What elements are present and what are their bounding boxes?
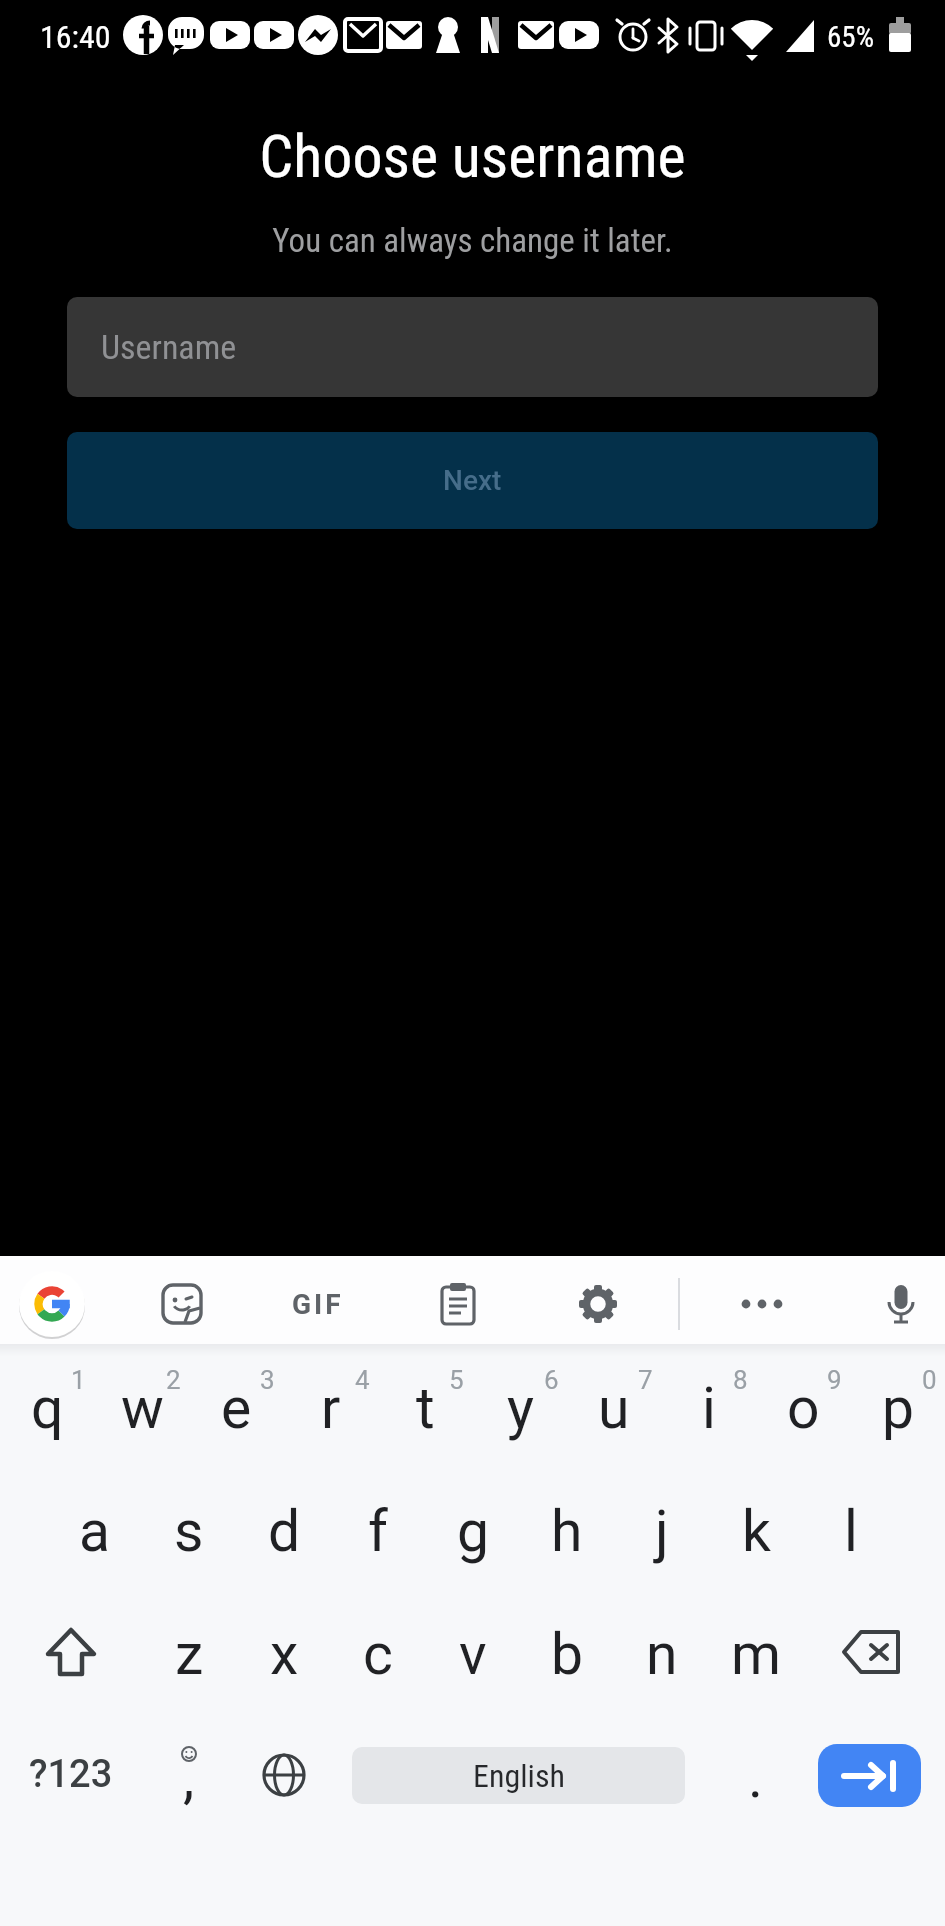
button[interactable]: b bbox=[520, 1590, 614, 1713]
staticText: Username bbox=[101, 327, 237, 367]
button[interactable]: p bbox=[851, 1344, 945, 1467]
staticText: 2 bbox=[166, 1365, 181, 1395]
staticText: 8 bbox=[733, 1365, 748, 1395]
staticText: t bbox=[416, 1375, 435, 1442]
button[interactable]: q bbox=[0, 1344, 94, 1467]
staticText: 65% bbox=[827, 20, 874, 54]
button[interactable]: n bbox=[615, 1590, 709, 1713]
staticText: f bbox=[368, 1498, 388, 1565]
button[interactable] bbox=[237, 1713, 331, 1836]
button[interactable]: c bbox=[331, 1590, 425, 1713]
button[interactable]: u bbox=[567, 1344, 661, 1467]
button[interactable]: a bbox=[48, 1467, 142, 1590]
staticText: , bbox=[183, 1744, 195, 1811]
staticText: q bbox=[31, 1375, 64, 1442]
staticText: 0 bbox=[922, 1365, 937, 1395]
staticText: j bbox=[655, 1498, 669, 1565]
button[interactable]: v bbox=[426, 1590, 520, 1713]
button[interactable]: . bbox=[709, 1713, 803, 1836]
button[interactable]: , bbox=[142, 1713, 236, 1836]
button[interactable] bbox=[0, 1590, 142, 1713]
staticText: English bbox=[473, 1757, 565, 1795]
button[interactable]: x bbox=[237, 1590, 331, 1713]
button[interactable]: r bbox=[284, 1344, 378, 1467]
staticText: . bbox=[748, 1744, 764, 1811]
staticText: g bbox=[457, 1498, 490, 1565]
staticText: d bbox=[268, 1498, 301, 1565]
button[interactable] bbox=[426, 1272, 490, 1336]
staticText: 4 bbox=[355, 1365, 370, 1395]
staticText: n bbox=[646, 1621, 678, 1688]
staticText: l bbox=[844, 1498, 858, 1565]
button[interactable]: m bbox=[709, 1590, 803, 1713]
staticText: You can always change it later. bbox=[0, 221, 945, 260]
button[interactable] bbox=[150, 1272, 214, 1336]
staticText: Choose username bbox=[0, 121, 945, 191]
button[interactable] bbox=[19, 1271, 85, 1337]
staticText: c bbox=[363, 1621, 393, 1688]
button[interactable]: l bbox=[804, 1467, 898, 1590]
button[interactable]: e bbox=[189, 1344, 283, 1467]
staticText: w bbox=[121, 1375, 164, 1442]
staticText: a bbox=[79, 1498, 111, 1565]
staticText: 1 bbox=[71, 1365, 86, 1395]
button[interactable]: h bbox=[520, 1467, 614, 1590]
button[interactable]: y bbox=[473, 1344, 567, 1467]
staticText: x bbox=[270, 1621, 299, 1688]
staticText: s bbox=[174, 1498, 204, 1565]
staticText: v bbox=[459, 1621, 487, 1688]
staticText: 16:40 bbox=[40, 18, 111, 56]
staticText: GIF bbox=[292, 1288, 344, 1321]
staticText: 3 bbox=[260, 1365, 275, 1395]
button[interactable] bbox=[730, 1272, 794, 1336]
staticText: k bbox=[742, 1498, 771, 1565]
button[interactable]: ?123 bbox=[0, 1713, 142, 1836]
staticText: e bbox=[221, 1375, 252, 1442]
button[interactable] bbox=[818, 1744, 921, 1807]
button[interactable]: o bbox=[756, 1344, 850, 1467]
button[interactable]: GIF bbox=[273, 1274, 363, 1334]
button[interactable] bbox=[803, 1590, 945, 1713]
button[interactable]: Username bbox=[67, 297, 878, 397]
button[interactable]: g bbox=[426, 1467, 520, 1590]
staticText: y bbox=[507, 1375, 534, 1442]
staticText: 7 bbox=[638, 1365, 653, 1395]
button[interactable]: j bbox=[615, 1467, 709, 1590]
staticText: ?123 bbox=[29, 1752, 113, 1797]
button[interactable]: w bbox=[95, 1344, 189, 1467]
staticText: u bbox=[598, 1375, 630, 1442]
staticText: m bbox=[731, 1621, 781, 1688]
staticText: 6 bbox=[544, 1365, 559, 1395]
button[interactable]: z bbox=[142, 1590, 236, 1713]
button[interactable]: k bbox=[709, 1467, 803, 1590]
staticText: b bbox=[551, 1621, 584, 1688]
button[interactable]: s bbox=[142, 1467, 236, 1590]
button[interactable]: i bbox=[662, 1344, 756, 1467]
staticText: z bbox=[175, 1621, 204, 1688]
button[interactable] bbox=[869, 1272, 933, 1336]
button[interactable]: Next bbox=[67, 432, 878, 529]
button[interactable]: f bbox=[331, 1467, 425, 1590]
button[interactable]: t bbox=[378, 1344, 472, 1467]
staticText: o bbox=[787, 1375, 820, 1442]
button[interactable]: English bbox=[352, 1747, 685, 1804]
button[interactable]: d bbox=[237, 1467, 331, 1590]
staticText: p bbox=[882, 1375, 915, 1442]
staticText: 9 bbox=[827, 1365, 842, 1395]
staticText: 5 bbox=[449, 1365, 464, 1395]
staticText: i bbox=[702, 1375, 716, 1442]
staticText: Next bbox=[443, 464, 502, 497]
staticText: r bbox=[321, 1375, 341, 1442]
button[interactable] bbox=[566, 1272, 630, 1336]
staticText: h bbox=[551, 1498, 583, 1565]
